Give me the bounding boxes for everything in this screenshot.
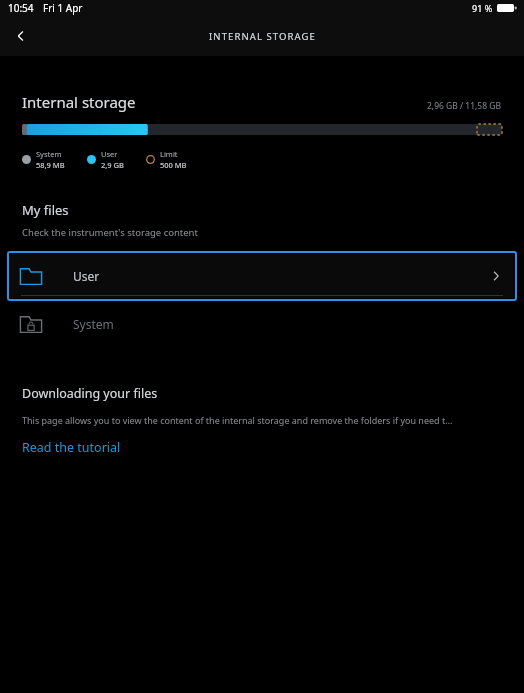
staticText: System xyxy=(36,149,62,159)
button[interactable]: Read the tutorial xyxy=(22,439,121,456)
staticText: Limit xyxy=(160,149,178,159)
button[interactable]: Back xyxy=(0,16,42,56)
staticText: User xyxy=(101,149,118,159)
staticText: Check the instrument's storage content xyxy=(22,226,198,239)
staticText: 500 MB xyxy=(160,160,187,170)
staticText: 2,9 GB xyxy=(101,160,124,170)
staticText: 10:54 xyxy=(8,1,34,15)
staticText: Fri 1 Apr xyxy=(43,1,83,15)
staticText: User xyxy=(73,268,100,284)
staticText: My files xyxy=(22,201,69,219)
staticText: 58,9 MB xyxy=(36,160,65,170)
button[interactable]: System xyxy=(0,301,524,347)
staticText: Internal storage xyxy=(22,92,136,112)
staticText: 2,96 GB / 11,58 GB xyxy=(427,100,502,112)
staticText: System xyxy=(73,316,114,332)
staticText: This page allows you to view the content… xyxy=(22,414,453,426)
staticText: INTERNAL STORAGE xyxy=(209,30,316,43)
staticText: Downloading your files xyxy=(22,385,158,402)
button[interactable]: User xyxy=(7,251,517,301)
staticText: 91 % xyxy=(472,2,493,14)
staticText: Read the tutorial xyxy=(22,439,121,456)
